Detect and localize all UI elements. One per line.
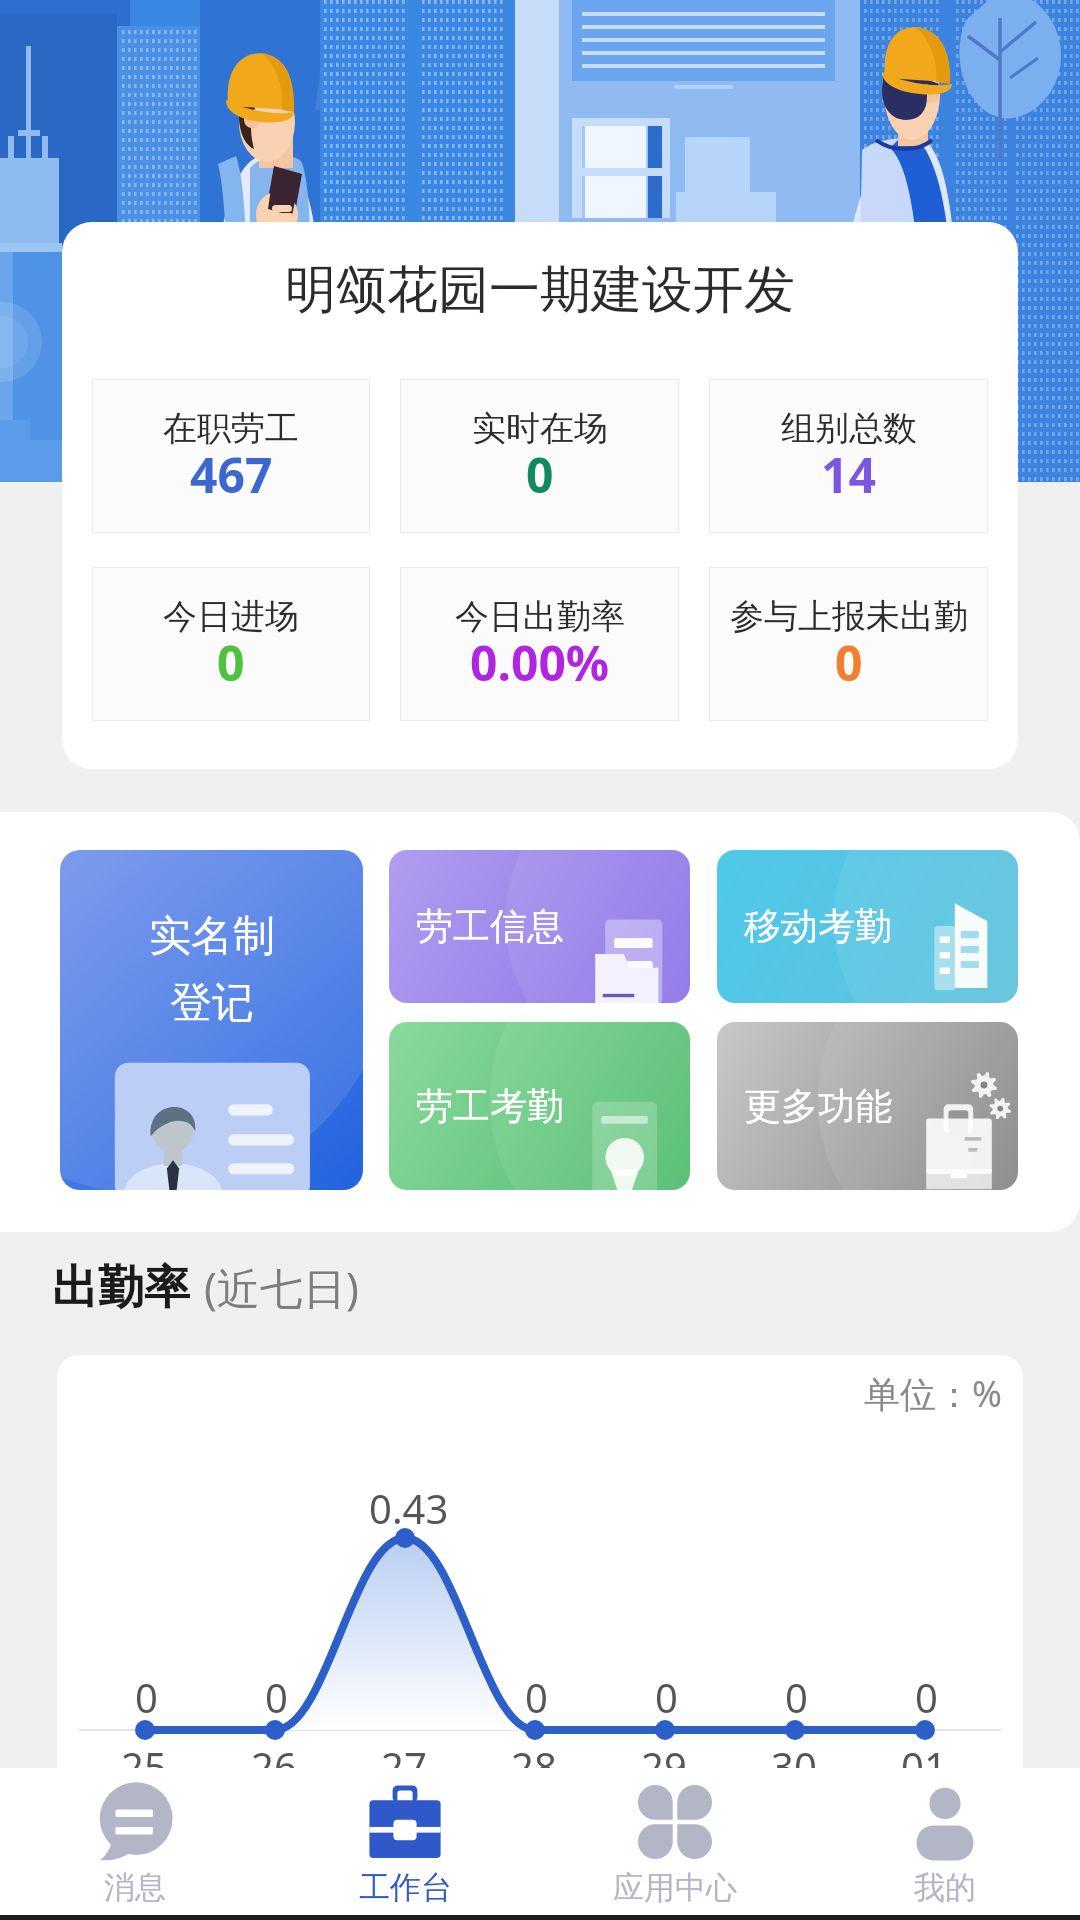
button[interactable]: 我的 [810,1784,1080,1915]
button[interactable]: 今日出勤率 [400,567,679,721]
staticText: 0 [835,630,863,695]
staticText: 29 [641,1739,687,1775]
staticText: 参与上报未出勤 [730,595,968,638]
staticText: 27 [381,1739,427,1775]
staticText: 28 [511,1739,557,1775]
staticText: 0 [135,1670,158,1724]
button[interactable]: 今日进场 [92,567,370,721]
button[interactable]: 劳工信息 [389,850,690,1003]
staticText: 14 [821,442,876,507]
button[interactable]: 参与上报未出勤 [709,567,988,721]
staticText: 0.00% [470,630,610,695]
staticText: 出勤率 [52,1259,190,1317]
staticText: 25 [121,1739,167,1775]
staticText: 消息 [104,1868,166,1907]
staticText: 在职劳工 [163,407,299,450]
staticText: 0 [785,1670,808,1724]
staticText: 登记 [170,977,254,1030]
staticText: 今日进场 [163,595,299,638]
staticText: 0 [915,1670,938,1724]
staticText: 467 [190,442,273,507]
staticText: 劳工信息 [416,903,564,950]
staticText: 0.43 [369,1481,449,1535]
staticText: 0 [525,1670,548,1724]
staticText: 实时在场 [472,407,608,450]
button[interactable]: 实名制登记 [60,850,363,1190]
staticText: 0 [217,630,245,695]
staticText: 0 [526,442,554,507]
button[interactable]: 更多功能 [717,1022,1018,1190]
button[interactable]: 组别总数 [709,379,988,533]
button[interactable]: 消息 [0,1784,270,1915]
staticText: 移动考勤 [744,903,892,950]
staticText: 应用中心 [613,1868,737,1907]
staticText: 01 [901,1739,947,1775]
staticText: 26 [251,1739,297,1775]
button[interactable]: 在职劳工 [92,379,370,533]
staticText: 30 [771,1739,817,1775]
staticText: 劳工考勤 [416,1083,564,1130]
staticText: (近七日) [204,1258,359,1317]
staticText: 更多功能 [744,1083,892,1130]
staticText: 我的 [914,1868,976,1907]
button[interactable]: 实时在场 [400,379,679,533]
button[interactable]: 移动考勤 [717,850,1018,1003]
staticText: 单位：% [864,1369,1002,1418]
staticText: 明颂花园一期建设开发 [62,258,1018,322]
staticText: 工作台 [359,1868,452,1907]
button[interactable]: 应用中心 [540,1784,810,1915]
button[interactable]: 工作台 [270,1784,540,1915]
staticText: 0 [655,1670,678,1724]
staticText: 实名制 [149,910,275,963]
staticText: 0 [265,1670,288,1724]
staticText: 今日出勤率 [455,595,625,638]
button[interactable]: 劳工考勤 [389,1022,690,1190]
staticText: 组别总数 [781,407,917,450]
